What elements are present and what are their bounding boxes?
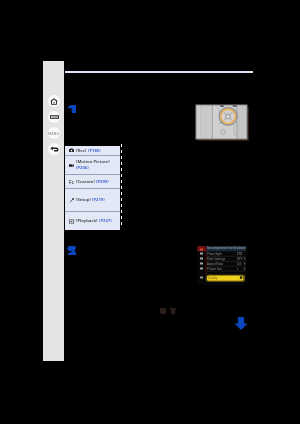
staticText: Filter Settings xyxy=(207,257,226,261)
button[interactable]: Fc xyxy=(65,175,120,188)
staticText: [Custom] xyxy=(76,179,95,185)
staticText: L xyxy=(237,267,239,271)
staticText: [Setup] xyxy=(76,197,91,203)
staticText: Aspect Ratio xyxy=(207,262,224,266)
staticText: [Motion Picture] xyxy=(76,159,110,165)
staticText: 4:3 xyxy=(237,262,241,266)
staticText: Picture Size xyxy=(207,267,223,271)
staticText: Set compression level of picture xyxy=(207,246,246,250)
staticText: (P206) xyxy=(76,165,89,171)
staticText: Photo Style xyxy=(207,252,222,256)
button[interactable]: Home xyxy=(48,95,60,107)
button[interactable]: [Motion Picture] xyxy=(65,156,120,174)
staticText: Quality xyxy=(208,276,218,280)
staticText: Fc xyxy=(69,179,74,184)
button[interactable]: Back xyxy=(48,143,60,155)
staticText: STD. xyxy=(237,252,243,256)
staticText: [Rec] xyxy=(76,148,87,154)
button[interactable]: [Setup] xyxy=(65,189,120,211)
staticText: MENU xyxy=(48,131,60,136)
staticText: OFF xyxy=(237,257,243,261)
staticText: (P227) xyxy=(99,218,112,224)
staticText: (P209) xyxy=(96,179,109,185)
staticText: [Playback] xyxy=(76,218,98,224)
button[interactable]: MENU xyxy=(48,127,60,139)
staticText: (P185) xyxy=(88,148,101,154)
button[interactable]: [Rec] xyxy=(65,146,120,155)
staticText: (P219) xyxy=(92,197,105,203)
button[interactable]: [Playback] xyxy=(65,212,120,230)
button[interactable]: Contents xyxy=(48,111,60,123)
button[interactable]: Next page xyxy=(232,314,250,332)
